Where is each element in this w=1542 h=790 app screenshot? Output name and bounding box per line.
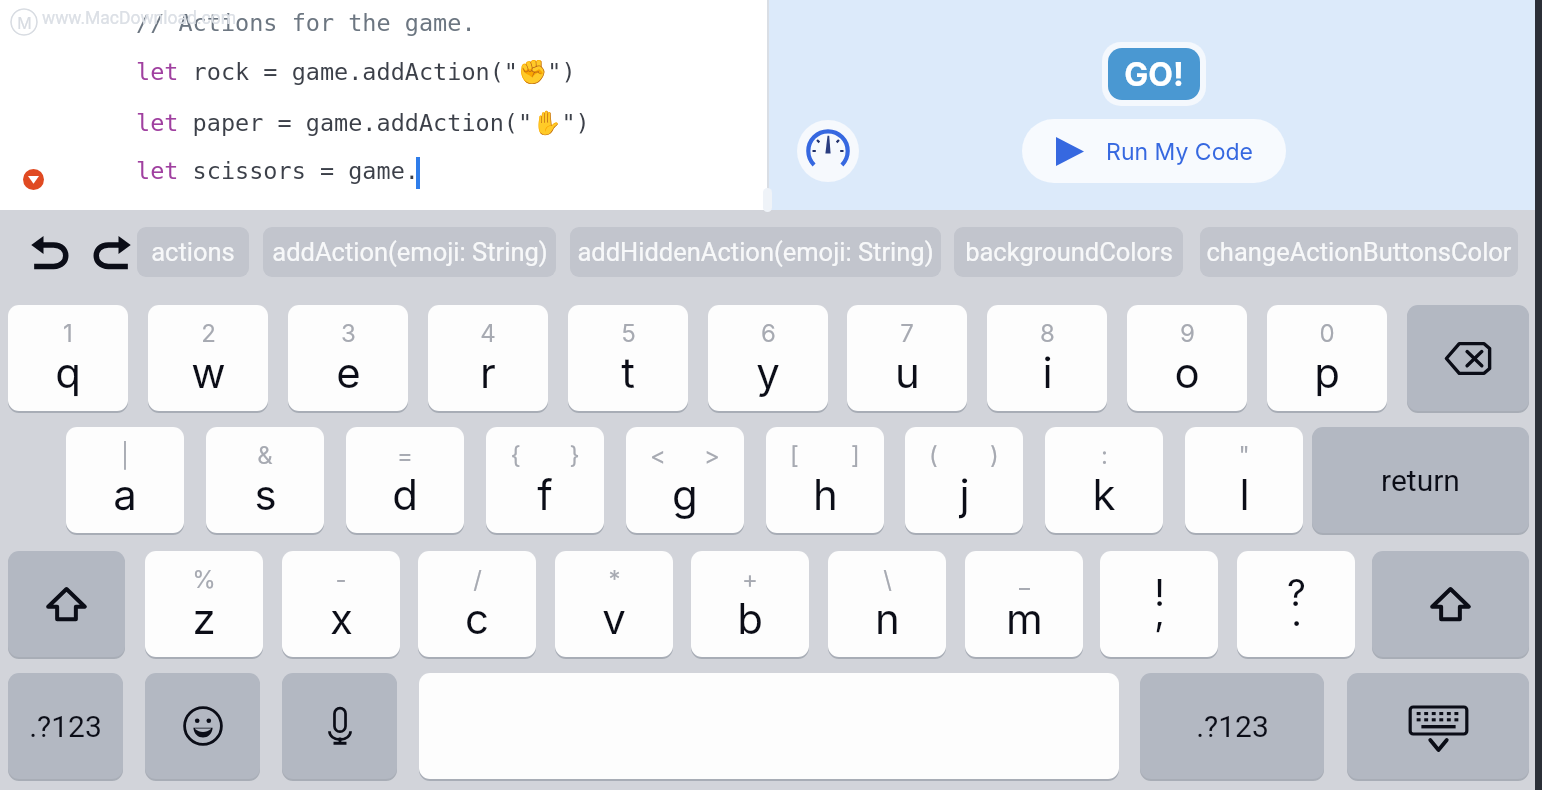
staticText: = <box>397 441 413 470</box>
button[interactable]: - <box>282 551 400 657</box>
button[interactable]: \ <box>828 551 946 657</box>
button[interactable]: actions <box>137 227 249 277</box>
staticText: \ <box>883 565 892 594</box>
staticText: u <box>895 347 920 398</box>
button[interactable]: * <box>555 551 673 657</box>
staticText: . <box>1291 590 1302 635</box>
button[interactable]: { <box>486 427 604 533</box>
staticText: j <box>959 469 970 520</box>
button[interactable]: Hide keyboard <box>1347 673 1529 779</box>
button[interactable]: 8 <box>987 305 1107 411</box>
staticText: & <box>257 441 273 470</box>
staticText: a <box>113 469 137 520</box>
button[interactable]: 5 <box>568 305 688 411</box>
staticText: , <box>1154 590 1165 635</box>
staticText: < <box>650 441 666 470</box>
staticText: d <box>392 469 418 520</box>
staticText: : <box>1101 441 1108 470</box>
button[interactable]: .?123 <box>1140 673 1324 779</box>
staticText: m <box>1006 593 1043 644</box>
button[interactable]: Undo <box>26 230 74 274</box>
staticText: GO! <box>1124 55 1184 94</box>
staticText: return <box>1381 463 1460 498</box>
button[interactable]: changeActionButtonsColor <box>1200 227 1518 277</box>
button[interactable]: addAction(emoji: String) <box>263 227 556 277</box>
button[interactable]: Error <box>23 169 44 190</box>
button[interactable]: 1 <box>8 305 128 411</box>
staticText: - <box>335 565 347 594</box>
staticText: ? <box>1287 570 1306 615</box>
staticText: 0 <box>1319 319 1335 348</box>
button[interactable]: Speed <box>797 120 859 182</box>
staticText: 9 <box>1180 319 1195 348</box>
button[interactable]: ! <box>1100 551 1218 657</box>
staticText: w <box>191 347 226 398</box>
button[interactable]: .?123 <box>8 673 123 779</box>
button[interactable]: GO! <box>1108 48 1200 100</box>
staticText: } <box>569 441 580 470</box>
staticText: k <box>1092 469 1116 520</box>
button[interactable]: Backspace <box>1407 305 1529 411</box>
button[interactable]: Shift <box>8 551 125 657</box>
button[interactable]: / <box>418 551 536 657</box>
staticText: ! <box>1154 570 1165 615</box>
button[interactable]: backgroundColors <box>954 227 1183 277</box>
button[interactable]: & <box>206 427 324 533</box>
staticText: // Actions for the game. <box>136 9 476 36</box>
staticText: actions <box>151 237 235 267</box>
staticText: z <box>192 593 216 644</box>
button[interactable]: 9 <box>1127 305 1247 411</box>
button[interactable]: 4 <box>428 305 548 411</box>
staticText: * <box>608 565 621 594</box>
button[interactable]: ? <box>1237 551 1355 657</box>
staticText: let rock = game.addAction("✊") <box>136 58 576 86</box>
staticText: 4 <box>480 319 496 348</box>
staticText: h <box>813 469 838 520</box>
button[interactable]: = <box>346 427 464 533</box>
staticText: { <box>510 441 521 470</box>
button[interactable]: Shift <box>1372 551 1529 657</box>
button[interactable]: Emoji <box>145 673 260 779</box>
staticText: ] <box>851 441 860 470</box>
button[interactable]: % <box>145 551 263 657</box>
staticText: 6 <box>761 319 776 348</box>
staticText: 8 <box>1040 319 1055 348</box>
staticText: 2 <box>201 319 216 348</box>
button[interactable]: ( <box>905 427 1023 533</box>
button[interactable]: : <box>1045 427 1163 533</box>
button[interactable]: < <box>626 427 744 533</box>
staticText: s <box>254 469 277 520</box>
staticText: ( <box>929 441 938 470</box>
button[interactable]: return <box>1312 427 1529 533</box>
staticText: addAction(emoji: String) <box>272 237 548 267</box>
button[interactable]: " <box>1185 427 1303 533</box>
staticText: M <box>17 13 32 32</box>
staticText: .?123 <box>29 709 102 744</box>
staticText: q <box>55 347 81 398</box>
staticText: / <box>473 565 482 594</box>
button[interactable]: Run My Code <box>1022 119 1286 183</box>
staticText: let scissors = game. <box>136 157 419 184</box>
button[interactable]: _ <box>965 551 1083 657</box>
staticText: let paper = game.addAction("✋") <box>136 109 590 137</box>
staticText: changeActionButtonsColor <box>1206 237 1512 267</box>
button[interactable]: 7 <box>847 305 967 411</box>
button[interactable]: Redo <box>88 230 136 274</box>
staticText: + <box>742 565 758 594</box>
button[interactable]: 2 <box>148 305 268 411</box>
button[interactable]: 3 <box>288 305 408 411</box>
button[interactable]: [ <box>766 427 884 533</box>
staticText: [ <box>790 441 799 470</box>
staticText: l <box>1239 469 1250 520</box>
button[interactable]: + <box>691 551 809 657</box>
staticText: x <box>330 593 353 644</box>
button[interactable]: | <box>66 427 184 533</box>
button[interactable]: Voice input <box>282 673 397 779</box>
button[interactable]: 0 <box>1267 305 1387 411</box>
staticText: " <box>1238 441 1250 470</box>
staticText: c <box>465 593 489 644</box>
button[interactable]: addHiddenAction(emoji: String) <box>570 227 941 277</box>
staticText: .?123 <box>1196 709 1269 744</box>
button[interactable]: 6 <box>708 305 828 411</box>
